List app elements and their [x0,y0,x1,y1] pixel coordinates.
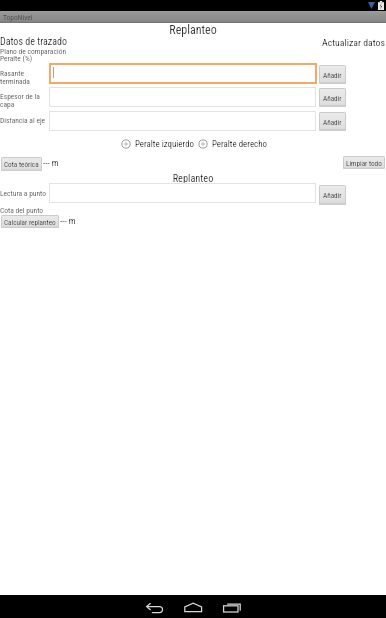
staticText: Distancia al eje [0,116,46,125]
staticText: Cota del punto [0,206,44,215]
button[interactable] [49,183,316,203]
button[interactable]: Añadir [319,185,346,205]
button[interactable]: Peralte derecho [198,139,267,149]
staticText: Añadir [323,71,342,79]
button[interactable]: Back [142,596,165,613]
button[interactable]: Actualizar datos [322,37,385,48]
staticText: Cota teórica [4,160,39,168]
staticText: Peralte (%) [0,54,33,63]
staticText: Añadir [323,191,342,199]
staticText: Replanteo [0,23,386,37]
staticText: Lectura a punto [0,189,47,198]
staticText: Añadir [323,118,342,126]
button[interactable] [49,87,316,107]
staticText: TopoNivel [3,13,33,22]
staticText: Peralte derecho [212,139,267,149]
button[interactable] [49,111,316,131]
staticText: Rasante terminada [0,69,30,86]
staticText: Peralte izquierdo [135,139,195,149]
staticText: Limpiar todo [346,159,382,167]
button[interactable] [49,63,317,84]
staticText: Añadir [323,94,342,102]
button[interactable]: Home [181,596,205,613]
button[interactable]: Recents [220,596,244,613]
staticText: Calcular replanteo [4,218,56,226]
button[interactable]: Calcular replanteo [1,215,59,228]
staticText: Plano de comparación [0,47,67,56]
button[interactable]: Añadir [319,112,346,131]
staticText: --- m [60,216,76,227]
button[interactable]: Limpiar todo [343,156,385,169]
staticText: Espesor de la capa [0,92,40,109]
button[interactable]: Añadir [319,88,346,107]
staticText: Datos de trazado [0,36,67,48]
staticText: --- m [43,158,59,169]
button[interactable]: Añadir [319,65,346,84]
button[interactable]: Peralte izquierdo [121,139,195,149]
staticText: Replanteo [0,172,386,184]
button[interactable]: Cota teórica [1,157,42,171]
